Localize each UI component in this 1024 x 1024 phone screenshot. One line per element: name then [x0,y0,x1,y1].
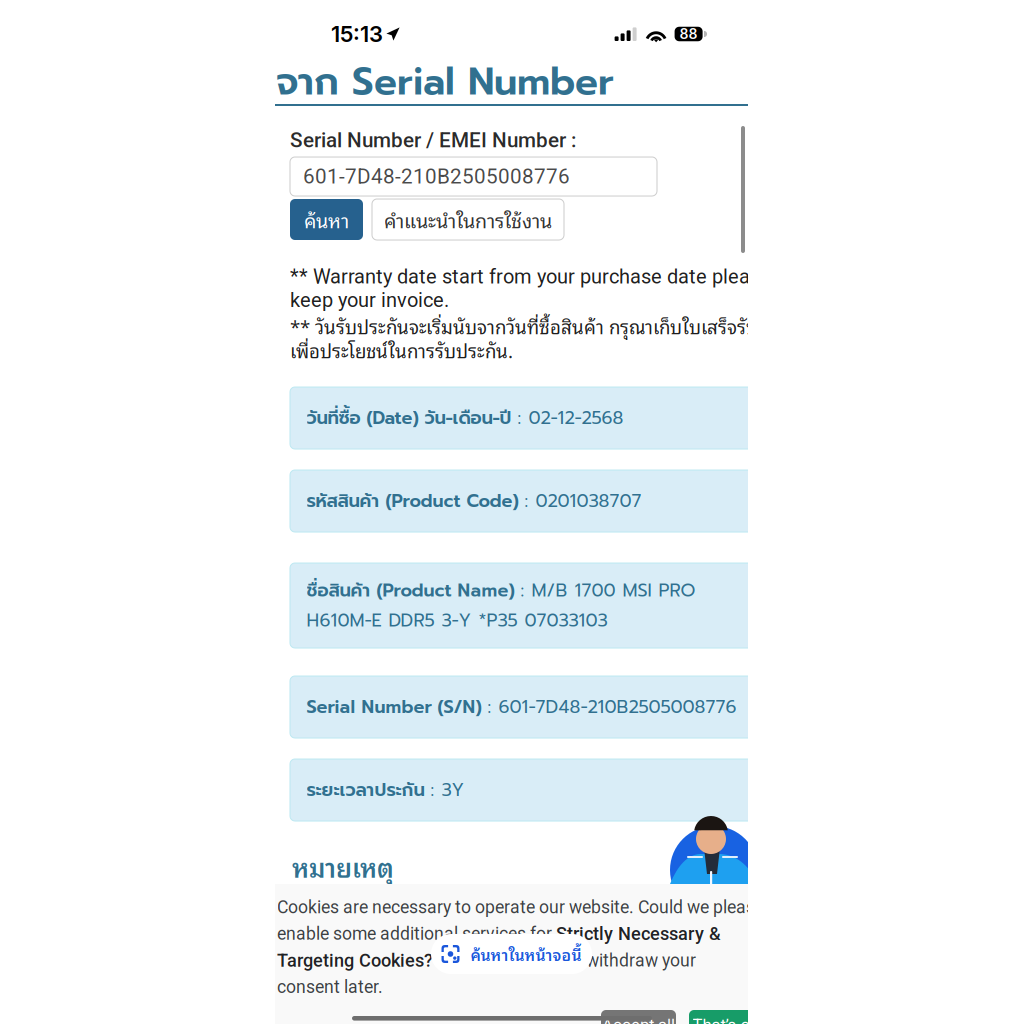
staticText: ** Warranty date start from your purchas… [290,265,771,288]
button[interactable]: Accept all [601,1010,676,1024]
staticText: รหัสสินค้า (Product Code) [306,487,524,515]
staticText: 88 [680,25,698,42]
staticText: : 0201038707 [524,487,641,515]
staticText: ** วันรับประกันจะเริ่มนับจากวันที่ซื้อสิ… [290,311,801,341]
staticText: Targeting Cookies? [277,950,433,971]
staticText: วันที่ซื้อ (Date) วัน-เดือน-ปี [306,404,517,432]
staticText: ระยะเวลาประกัน [306,776,430,804]
button[interactable]: ค้นหาในหน้าจอนี้ [431,934,592,974]
staticText: หมายเหตุ [292,846,394,886]
staticText: That’s ok [692,1015,758,1024]
button[interactable]: ค้นหา [290,199,363,240]
button[interactable]: That’s ok [689,1010,762,1024]
staticText: Cookies are necessary to operate our web… [277,897,764,918]
staticText: Serial Number (S/N) [306,693,487,721]
staticText: You can change or withdraw your [433,950,696,971]
staticText: enable some additional services for [277,923,556,944]
staticText: Serial Number / EMEI Number : [290,128,576,152]
staticText: 601-7D48-210B2505008776 [303,164,570,189]
staticText: consent later. [277,977,383,997]
staticText: : 02-12-2568 [517,404,623,432]
staticText: จาก Serial Number [276,53,614,110]
staticText: เพื่อประโยชน์ในการรับประกัน. [290,335,513,365]
staticText: ค้นหา [304,204,349,235]
staticText: : 3Y [430,776,464,804]
staticText: ค้นหาในหน้าจอนี้ [470,941,581,967]
staticText: : 601-7D48-210B2505008776 [487,693,736,721]
staticText: H610M-E DDR5 3-Y *P35 07033103 [306,607,607,634]
staticText: Strictly Necessary & [556,923,721,944]
staticText: คำแนะนำในการใช้งาน [384,204,552,235]
staticText: keep your invoice. [290,288,449,312]
staticText: Accept all [602,1015,675,1024]
staticText: ชื่อสินค้า (Product Name) [306,577,520,604]
staticText: 15:13 [331,21,383,47]
button[interactable]: คำแนะนำในการใช้งาน [372,199,564,240]
staticText: : M/B 1700 MSI PRO [520,577,695,604]
